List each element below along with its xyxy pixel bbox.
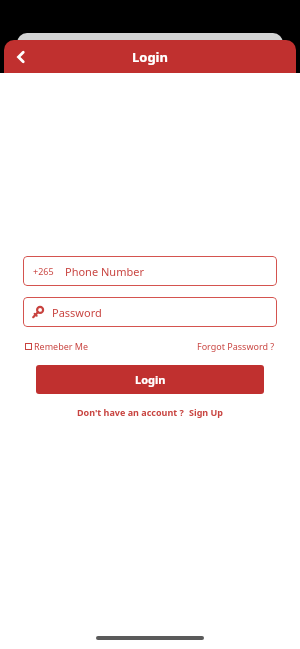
- staticText: Phone Number: [65, 264, 144, 279]
- staticText: Forgot Password ?: [197, 340, 275, 352]
- button[interactable]: Sign Up: [189, 406, 224, 418]
- button[interactable]: Remeber Me: [25, 338, 89, 354]
- staticText: Don't have an account ?: [77, 406, 184, 418]
- button[interactable]: Password: [23, 297, 277, 327]
- button[interactable]: Forgot Password ?: [197, 338, 275, 354]
- staticText: Password: [52, 305, 102, 320]
- staticText: Sign Up: [189, 406, 224, 418]
- staticText: Login: [132, 48, 168, 66]
- button[interactable]: Back: [4, 40, 38, 73]
- staticText: Login: [135, 372, 166, 387]
- button[interactable]: Login: [36, 365, 264, 394]
- staticText: +265: [33, 265, 54, 277]
- staticText: Remeber Me: [34, 340, 89, 352]
- button[interactable]: +265: [23, 256, 277, 286]
